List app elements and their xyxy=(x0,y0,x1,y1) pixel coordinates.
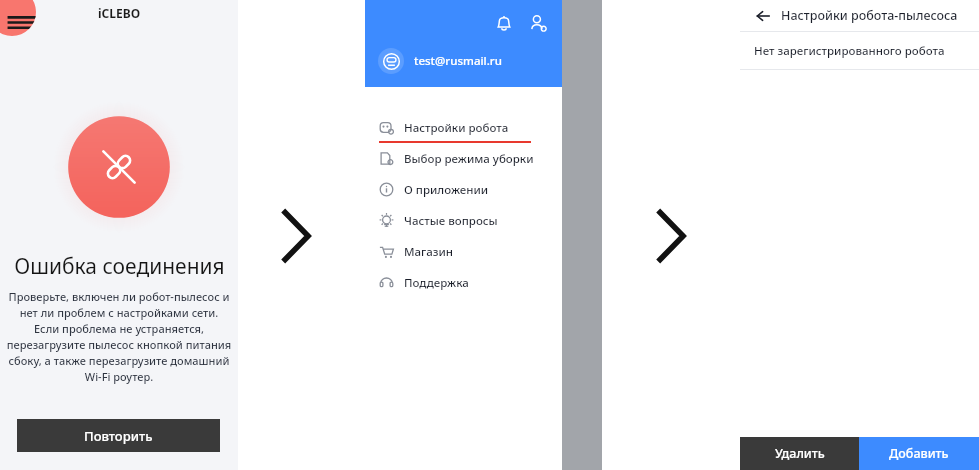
button[interactable]: Выбор режима уборки xyxy=(365,143,562,174)
staticText: О приложении xyxy=(404,182,489,198)
button[interactable]: Menu xyxy=(0,0,36,36)
staticText: Добавить xyxy=(889,445,949,462)
button[interactable]: Нет зарегистрированного робота xyxy=(740,32,979,69)
button[interactable]: Notifications xyxy=(493,12,515,34)
button[interactable]: Добавить xyxy=(859,437,979,470)
button[interactable]: Настройки робота xyxy=(365,112,562,143)
staticText: iCLEBO xyxy=(98,5,141,21)
button[interactable]: Повторить xyxy=(17,419,220,452)
staticText: Нет зарегистрированного робота xyxy=(754,43,945,59)
staticText: Поддержка xyxy=(404,275,469,291)
button[interactable]: Магазин xyxy=(365,236,562,267)
button[interactable]: Частые вопросы xyxy=(365,205,562,236)
staticText: Удалить xyxy=(775,445,825,462)
staticText: Настройки робота-пылесоса xyxy=(781,7,958,24)
staticText: Частые вопросы xyxy=(404,213,498,229)
button[interactable]: Удалить xyxy=(740,437,859,470)
button[interactable]: О приложении xyxy=(365,174,562,205)
staticText: Ошибка соединения xyxy=(14,252,225,281)
staticText: test@rusmail.ru xyxy=(414,53,502,69)
staticText: Магазин xyxy=(404,244,454,260)
staticText: Проверьте, включен ли робот-пылесос и не… xyxy=(6,289,232,384)
button[interactable]: Back xyxy=(754,7,772,25)
staticText: Выбор режима уборки xyxy=(404,151,534,167)
staticText: Повторить xyxy=(84,427,153,445)
button[interactable]: Поддержка xyxy=(365,267,562,298)
button[interactable]: Account settings xyxy=(527,12,549,34)
staticText: Настройки робота xyxy=(404,120,509,136)
